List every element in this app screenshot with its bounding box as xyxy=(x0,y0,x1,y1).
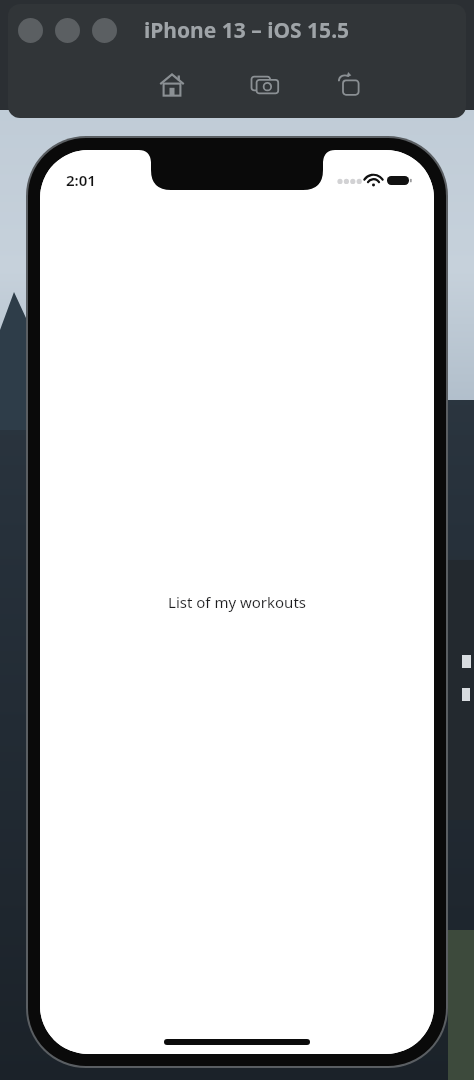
staticText: List of my workouts xyxy=(168,592,306,612)
staticText: iPhone 13 – iOS 15.5 xyxy=(144,16,350,45)
staticText: 2:01 xyxy=(66,170,96,190)
button[interactable]: Rotate device xyxy=(326,62,372,106)
button[interactable]: Minimise window xyxy=(55,18,80,43)
button[interactable]: Screenshot xyxy=(242,64,288,106)
button[interactable]: Home xyxy=(150,64,194,106)
button[interactable]: Close window xyxy=(18,18,43,43)
button[interactable]: Zoom window xyxy=(92,18,117,43)
